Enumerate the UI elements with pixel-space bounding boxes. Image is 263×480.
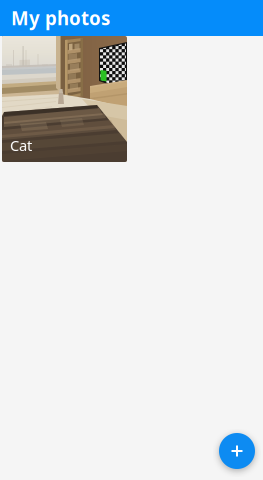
staticText: My photos [11, 6, 110, 30]
staticText: Cat [10, 135, 32, 155]
button[interactable]: Cat [2, 36, 127, 162]
button[interactable]: Add photo [219, 433, 255, 469]
